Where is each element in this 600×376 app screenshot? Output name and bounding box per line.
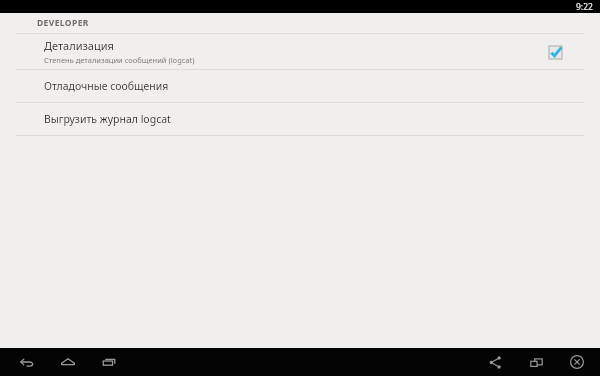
button[interactable]: Выгрузить журнал logcat — [0, 103, 600, 135]
button[interactable]: Recent apps — [95, 348, 123, 376]
staticText: Выгрузить журнал logcat — [44, 112, 171, 126]
button[interactable]: Share — [481, 348, 509, 376]
button[interactable]: Home — [54, 348, 82, 376]
button[interactable]: Back — [13, 348, 41, 376]
staticText: 9:22 — [576, 1, 593, 13]
staticText: Отладочные сообщения — [44, 79, 169, 93]
button[interactable]: Switch screen — [522, 348, 550, 376]
button[interactable]: Детализация toggle — [544, 41, 566, 63]
staticText: Детализация — [44, 38, 114, 53]
button[interactable]: Детализация — [0, 34, 600, 69]
button[interactable]: Отладочные сообщения — [0, 70, 600, 102]
button[interactable]: Close — [563, 348, 591, 376]
staticText: Степень детализации сообщений (logcat) — [44, 55, 195, 65]
staticText: DEVELOPER — [37, 17, 89, 29]
